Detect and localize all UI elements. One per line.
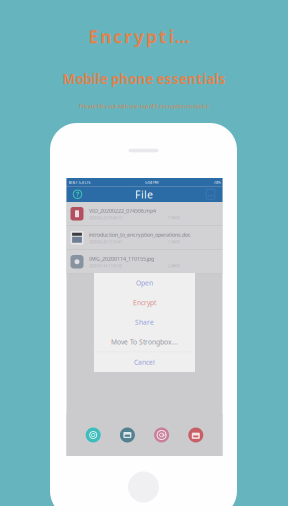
staticText: ? [76, 190, 79, 199]
button[interactable]: Videos [120, 427, 135, 442]
staticText: 2020-01-14 11:01:55 [89, 263, 122, 268]
button[interactable]: Help [70, 187, 85, 202]
staticText: Private file vault with one-tap AES encr… [79, 103, 209, 110]
button[interactable]: introduction_to_encryption_operations.do… [66, 226, 222, 249]
button[interactable]: Camera [154, 427, 169, 442]
staticText: introduction_to_encryption_operations.do… [89, 231, 191, 238]
button[interactable]: Cancel [94, 352, 195, 372]
staticText: Encryption [88, 25, 199, 48]
staticText: File [135, 187, 153, 201]
staticText: 2020-02-22 07:46:13 [89, 215, 122, 220]
button[interactable]: Gallery [188, 427, 203, 442]
staticText: Share [135, 318, 154, 327]
staticText: Cancel [134, 358, 155, 367]
button[interactable]: Storage [203, 187, 218, 202]
staticText: IMG_20200114_110155.jpg [89, 255, 154, 262]
button[interactable]: Encrypt [94, 293, 195, 312]
staticText: VID_20200222_074506.mp4 [89, 207, 156, 214]
staticText: 74% [213, 180, 220, 185]
button[interactable]: Photos [86, 427, 101, 442]
staticText: Mobile phone essentials [62, 70, 226, 88]
staticText: 7.9MB [168, 215, 180, 220]
staticText: Encrypt [133, 298, 156, 307]
staticText: AT&T 5.4 LTE [68, 180, 90, 185]
staticText: 2.4MB [168, 263, 180, 268]
button[interactable]: IMG_20200114_110155.jpg [66, 250, 222, 273]
button[interactable]: VID_20200222_074506.mp4 [66, 202, 222, 225]
staticText: 2020-02-20 11:23:41 [89, 239, 122, 244]
button[interactable]: Share [94, 312, 195, 332]
staticText: 5:04 PM [145, 180, 159, 185]
button[interactable]: Move To Strongbox... [94, 332, 195, 352]
staticText: Open [136, 278, 153, 287]
staticText: Move To Strongbox... [111, 337, 178, 346]
staticText: 1.2MB [168, 239, 180, 244]
button[interactable]: Open [94, 273, 195, 293]
